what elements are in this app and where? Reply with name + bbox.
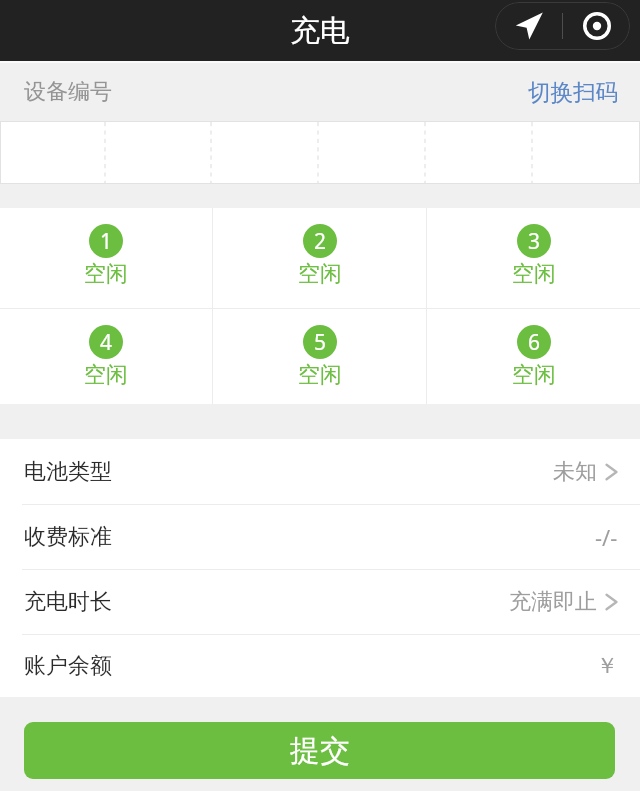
button[interactable]: 提交 [24,722,615,779]
button[interactable]: 4 [0,309,212,404]
staticText: 提交 [290,732,350,770]
button[interactable]: Scan QR code [563,2,630,50]
button[interactable]: 1 [0,208,212,308]
staticText: 电池类型 [24,458,112,486]
staticText: 设备编号 [24,78,112,106]
staticText: 4 [100,328,113,357]
staticText: 充满即止 [509,588,597,616]
button[interactable]: 5 [213,309,426,404]
button[interactable]: 切换扫码 [508,68,640,116]
staticText: 空闲 [84,260,128,288]
staticText: 空闲 [298,361,342,389]
staticText: -/- [595,522,618,552]
staticText: 账户余额 [24,652,112,680]
staticText: 空闲 [84,361,128,389]
staticText: 充电 [290,12,350,50]
button[interactable]: 2 [213,208,426,308]
button[interactable]: 6 [427,309,640,404]
staticText: 空闲 [512,361,556,389]
staticText: 5 [314,328,327,357]
button[interactable]: 充电时长 [0,570,640,634]
staticText: 切换扫码 [528,78,618,106]
staticText: 未知 [553,458,597,486]
staticText: 空闲 [298,260,342,288]
button[interactable]: 3 [427,208,640,308]
button[interactable]: 收费标准 [0,505,640,569]
button[interactable]: 账户余额 [0,635,640,697]
staticText: 收费标准 [24,523,112,551]
button[interactable]: Locate me [495,2,562,50]
staticText: 空闲 [512,260,556,288]
staticText: 充电时长 [24,588,112,616]
staticText: 2 [314,227,327,256]
button[interactable]: Device number input [0,121,640,184]
staticText: 6 [528,328,541,357]
staticText: ￥ [596,652,618,680]
staticText: 3 [528,227,541,256]
staticText: 1 [100,227,113,256]
button[interactable]: 电池类型 [0,439,640,504]
